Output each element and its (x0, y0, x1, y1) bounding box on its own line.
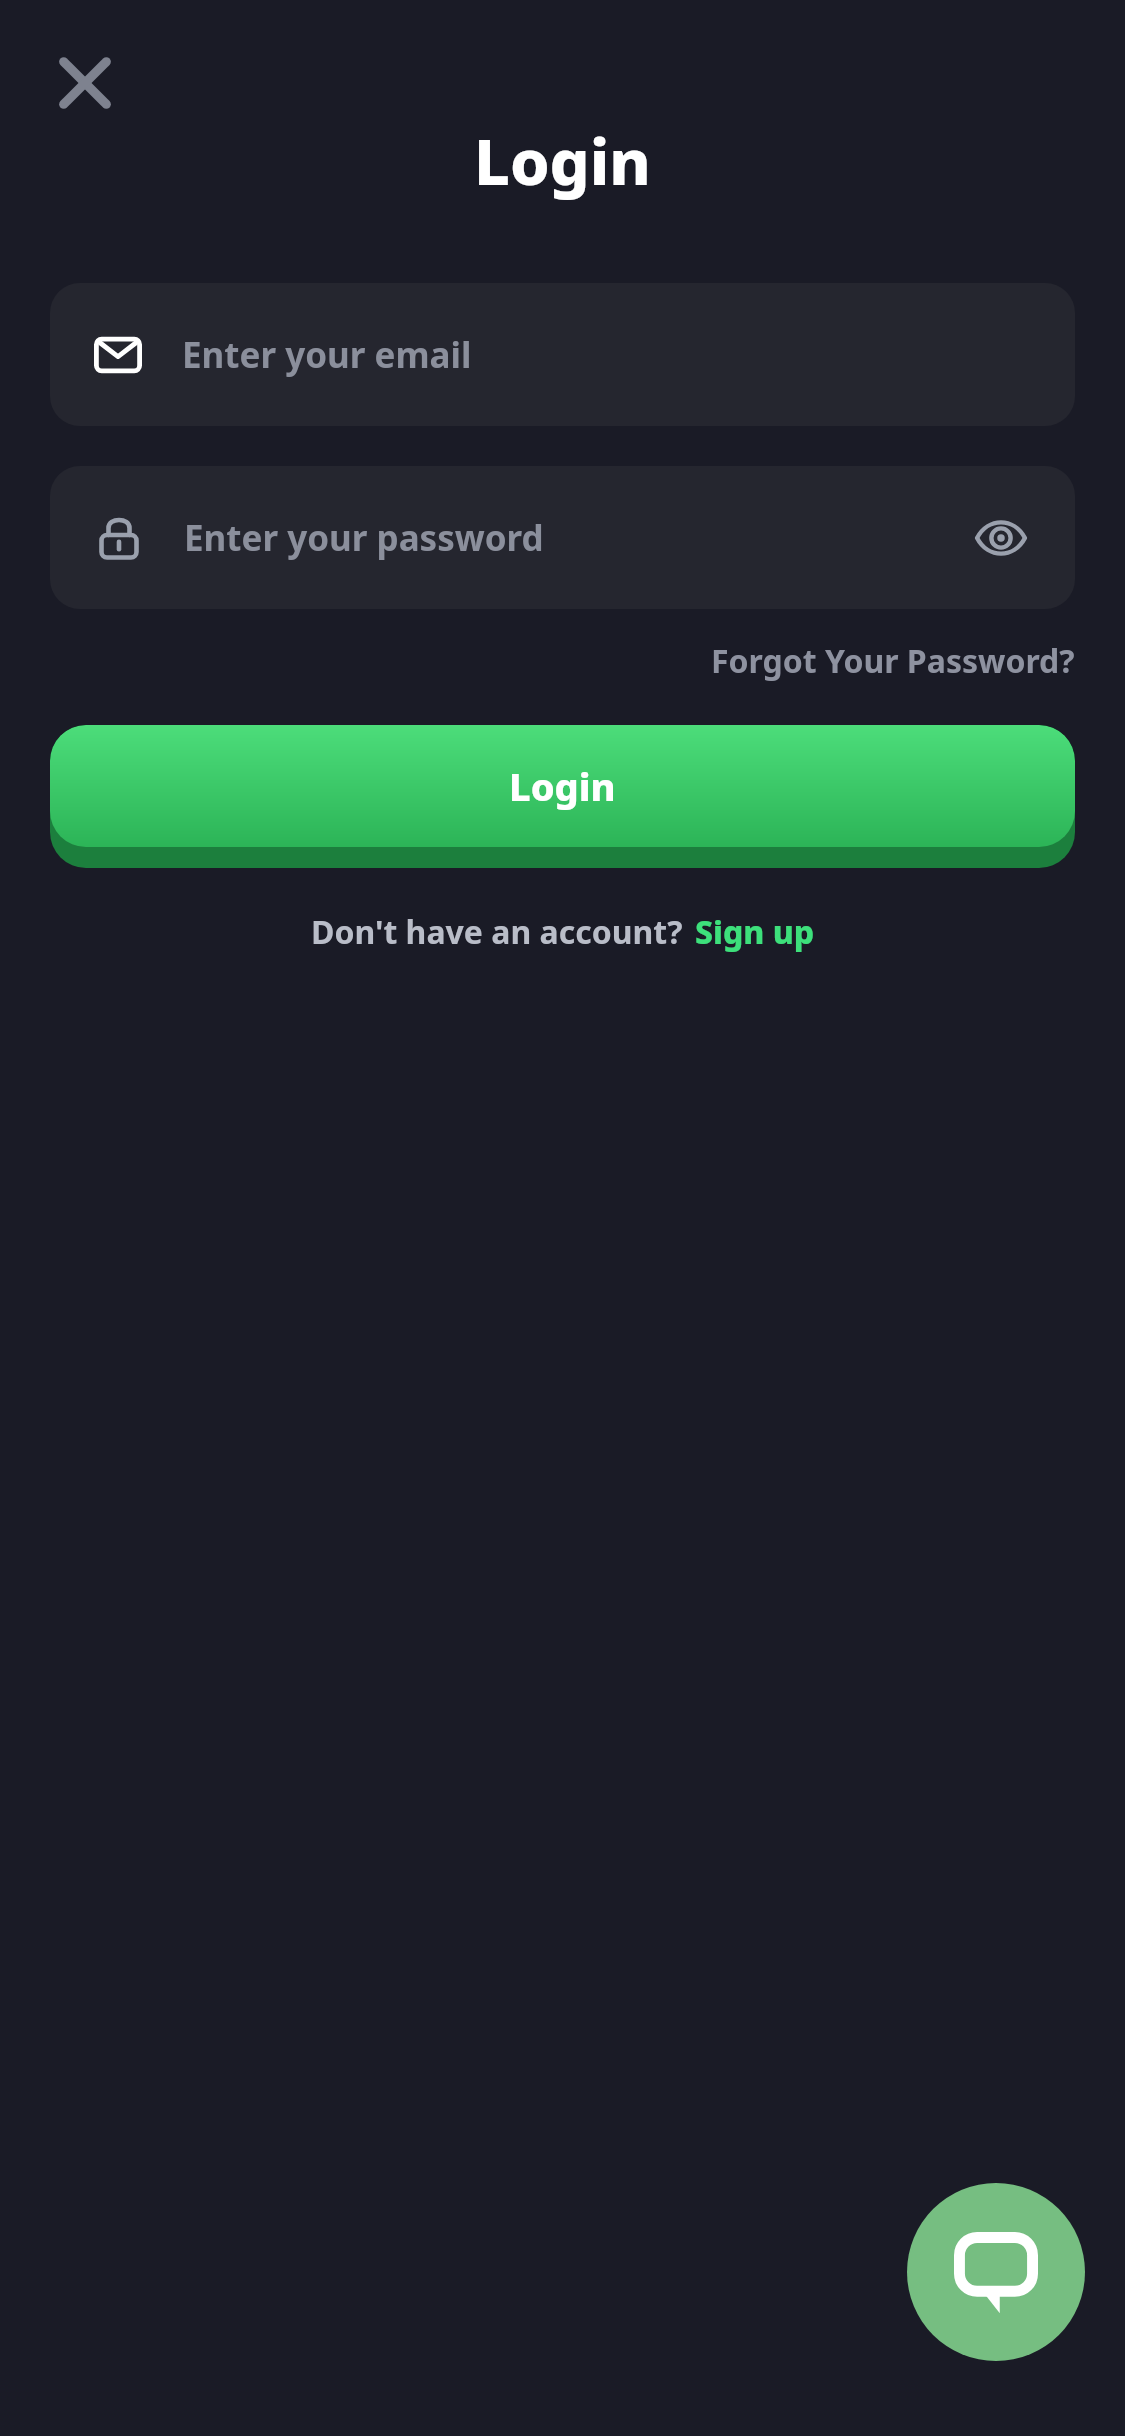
button[interactable]: Close (40, 38, 130, 128)
staticText: Enter your email (182, 331, 472, 379)
button[interactable]: Enter your password (50, 466, 1075, 609)
staticText: Sign up (695, 910, 815, 954)
button[interactable]: Forgot Your Password? (697, 623, 1089, 699)
button[interactable]: Login (50, 725, 1075, 868)
staticText: Forgot Your Password? (711, 639, 1075, 683)
button[interactable]: Sign up (695, 910, 815, 954)
staticText: Don't have an account? (311, 910, 683, 954)
staticText: Login (509, 760, 616, 812)
staticText: Login (474, 118, 651, 204)
button[interactable]: Chat support (907, 2183, 1085, 2361)
button[interactable]: Enter your email (50, 283, 1075, 426)
button[interactable]: Show password (963, 500, 1039, 576)
staticText: Enter your password (184, 514, 544, 562)
